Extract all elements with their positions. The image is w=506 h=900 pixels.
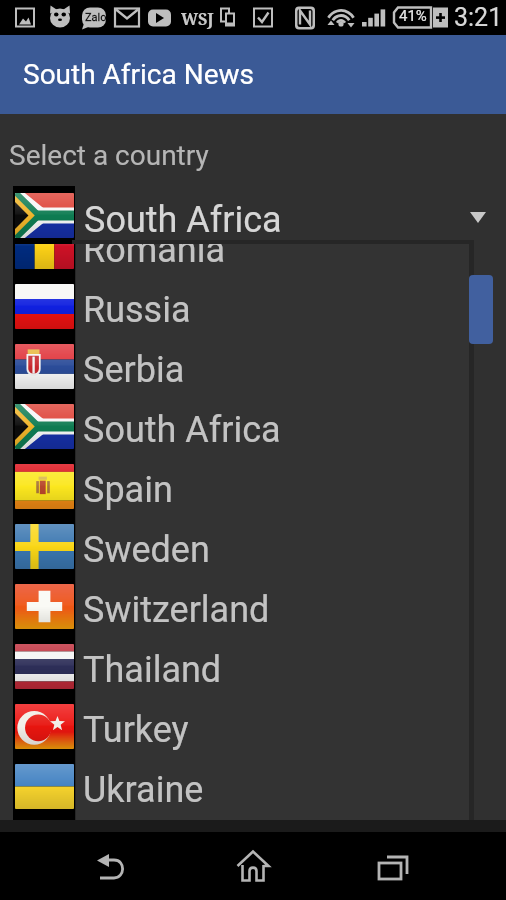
- button[interactable]: Russia: [0, 280, 506, 340]
- staticText: Russia: [83, 289, 191, 331]
- button[interactable]: Back: [78, 832, 148, 900]
- button[interactable]: Ukraine: [0, 760, 506, 820]
- button[interactable]: South Africa: [0, 186, 506, 244]
- staticText: 3:21: [454, 3, 503, 32]
- button[interactable]: Home: [218, 832, 288, 900]
- staticText: Zalo: [85, 11, 107, 24]
- staticText: South Africa News: [23, 58, 254, 91]
- staticText: Romania: [83, 244, 226, 271]
- staticText: Serbia: [83, 349, 185, 391]
- staticText: Turkey: [83, 709, 189, 751]
- button[interactable]: Serbia: [0, 340, 506, 400]
- button[interactable]: Sweden: [0, 520, 506, 580]
- staticText: South Africa: [83, 409, 281, 451]
- button[interactable]: Switzerland: [0, 580, 506, 640]
- staticText: 41%: [399, 7, 427, 25]
- staticText: Ukraine: [83, 769, 204, 811]
- staticText: Switzerland: [83, 589, 270, 631]
- staticText: Select a country: [9, 139, 209, 172]
- other: Open country list: [470, 212, 486, 223]
- button[interactable]: Thailand: [0, 640, 506, 700]
- staticText: Sweden: [83, 529, 210, 571]
- staticText: WSJ: [181, 8, 214, 30]
- button[interactable]: Spain: [0, 460, 506, 520]
- staticText: Thailand: [83, 649, 222, 691]
- button[interactable]: Turkey: [0, 700, 506, 760]
- button[interactable]: Recents: [358, 832, 428, 900]
- staticText: Spain: [83, 469, 173, 511]
- button[interactable]: South Africa: [0, 400, 506, 460]
- button[interactable]: Romania: [0, 244, 506, 280]
- button[interactable]: South Africa News: [0, 35, 506, 114]
- staticText: South Africa: [84, 199, 282, 241]
